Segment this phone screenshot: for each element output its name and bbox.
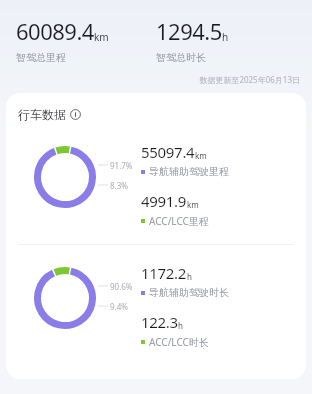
other: Info bbox=[70, 109, 81, 120]
staticText: h bbox=[222, 30, 229, 44]
staticText: km bbox=[195, 150, 207, 161]
staticText: 数据更新至2025年06月13日 bbox=[0, 74, 300, 85]
staticText: ACC/LCC里程 bbox=[149, 214, 209, 228]
staticText: h bbox=[187, 271, 192, 282]
staticText: 91.7% bbox=[110, 160, 133, 171]
staticText: 4991.9 bbox=[141, 191, 187, 211]
staticText: 智驾总时长 bbox=[156, 51, 206, 64]
staticText: 60089.4 bbox=[16, 16, 94, 46]
staticText: 导航辅助驾驶时长 bbox=[149, 286, 229, 299]
staticText: 导航辅助驾驶里程 bbox=[149, 165, 229, 178]
staticText: ACC/LCC时长 bbox=[149, 335, 209, 349]
staticText: km bbox=[94, 30, 109, 44]
staticText: 行车数据 bbox=[18, 107, 66, 122]
staticText: km bbox=[187, 199, 199, 210]
staticText: 1294.5 bbox=[156, 16, 222, 46]
staticText: 8.3% bbox=[110, 180, 128, 191]
staticText: 智驾总里程 bbox=[16, 51, 66, 64]
staticText: 122.3 bbox=[141, 312, 178, 332]
staticText: 90.6% bbox=[110, 281, 133, 292]
button[interactable]: 行车数据 bbox=[18, 107, 87, 122]
staticText: 1172.2 bbox=[141, 263, 187, 283]
staticText: 9.4% bbox=[110, 301, 128, 312]
staticText: h bbox=[178, 320, 183, 331]
staticText: 55097.4 bbox=[141, 142, 195, 162]
